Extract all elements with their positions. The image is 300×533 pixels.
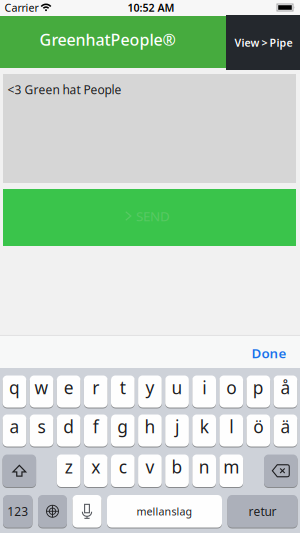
- staticText: y: [145, 376, 154, 399]
- staticText: w: [35, 376, 49, 399]
- button[interactable]: d: [57, 414, 80, 446]
- staticText: Carrier: [4, 0, 38, 15]
- staticText: d: [63, 415, 74, 438]
- staticText: z: [65, 455, 73, 478]
- button[interactable]: i: [192, 375, 216, 407]
- button[interactable]: j: [165, 414, 189, 446]
- staticText: 123: [7, 503, 28, 519]
- staticText: j: [175, 415, 179, 438]
- button[interactable]: g: [111, 414, 135, 446]
- staticText: p: [253, 376, 264, 399]
- button[interactable]: m: [219, 454, 243, 487]
- button[interactable]: q: [3, 375, 26, 407]
- button[interactable]: Next keyboard: [38, 495, 67, 527]
- staticText: å: [280, 376, 290, 399]
- button[interactable]: Shift: [3, 454, 36, 487]
- staticText: <3 Green hat People: [7, 81, 121, 97]
- staticText: r: [92, 376, 99, 399]
- button[interactable]: a: [3, 414, 26, 446]
- staticText: n: [199, 455, 210, 478]
- button[interactable]: u: [165, 375, 189, 407]
- staticText: l: [229, 415, 233, 438]
- staticText: 10:52 AM: [127, 0, 174, 15]
- button[interactable]: n: [192, 454, 216, 487]
- button[interactable]: z: [57, 454, 80, 487]
- button[interactable]: f: [84, 414, 108, 446]
- button[interactable]: Delete: [264, 454, 297, 487]
- staticText: SEND: [136, 207, 170, 225]
- button[interactable]: w: [30, 375, 53, 407]
- button[interactable]: s: [30, 414, 53, 446]
- staticText: c: [119, 455, 127, 478]
- staticText: GreenhatPeople®: [39, 29, 175, 50]
- button[interactable]: l: [219, 414, 243, 446]
- button[interactable]: ö: [246, 414, 270, 446]
- staticText: k: [200, 415, 209, 438]
- staticText: v: [145, 455, 154, 478]
- staticText: View > Pipe: [234, 35, 292, 50]
- staticText: m: [223, 455, 239, 478]
- button[interactable]: t: [111, 375, 135, 407]
- staticText: s: [38, 415, 46, 438]
- staticText: h: [144, 415, 155, 438]
- button[interactable]: ä: [274, 414, 297, 446]
- button[interactable]: å: [274, 375, 297, 407]
- button[interactable]: Message text field: [3, 74, 296, 183]
- button[interactable]: k: [192, 414, 216, 446]
- button[interactable]: p: [246, 375, 270, 407]
- staticText: q: [9, 376, 20, 399]
- button[interactable]: e: [57, 375, 80, 407]
- staticText: b: [172, 455, 183, 478]
- staticText: mellanslag: [136, 504, 192, 518]
- staticText: a: [9, 415, 19, 438]
- staticText: g: [117, 415, 128, 438]
- button[interactable]: c: [111, 454, 135, 487]
- staticText: ä: [280, 415, 290, 438]
- button[interactable]: b: [165, 454, 189, 487]
- button[interactable]: 123: [3, 495, 32, 527]
- staticText: retur: [248, 503, 276, 519]
- button[interactable]: retur: [227, 495, 297, 527]
- staticText: x: [91, 455, 100, 478]
- staticText: u: [172, 376, 183, 399]
- button[interactable]: h: [138, 414, 162, 446]
- button[interactable]: Dictate: [72, 495, 101, 527]
- staticText: Done: [251, 344, 286, 362]
- staticText: e: [64, 376, 74, 399]
- button[interactable]: Done: [251, 344, 286, 362]
- button[interactable]: mellanslag: [107, 495, 222, 527]
- button[interactable]: o: [219, 375, 243, 407]
- staticText: i: [202, 376, 206, 399]
- button[interactable]: x: [84, 454, 108, 487]
- staticText: f: [93, 415, 99, 438]
- button[interactable]: View > Pipe: [226, 15, 300, 70]
- button[interactable]: y: [138, 375, 162, 407]
- button[interactable]: r: [84, 375, 108, 407]
- staticText: o: [226, 376, 236, 399]
- staticText: t: [120, 376, 126, 399]
- staticText: ö: [253, 415, 263, 438]
- button[interactable]: v: [138, 454, 162, 487]
